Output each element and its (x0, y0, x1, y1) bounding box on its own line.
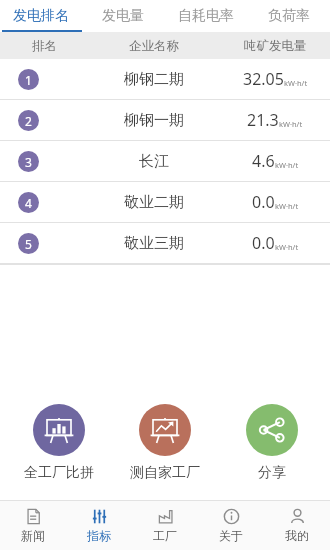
staticText: kW·h/t (275, 160, 299, 170)
staticText: 分享 (258, 464, 286, 482)
staticText: 企业名称 (129, 38, 179, 54)
staticText: 5 (25, 236, 32, 252)
staticText: 柳钢二期 (124, 70, 184, 89)
staticText: 我的 (285, 528, 309, 543)
staticText: 负荷率 (268, 7, 310, 25)
staticText: 3 (25, 154, 32, 170)
button[interactable]: 5 (0, 223, 330, 263)
button[interactable]: 发电排名 (0, 0, 82, 32)
button[interactable]: 1 (0, 59, 330, 99)
staticText: 敬业二期 (124, 193, 184, 212)
other: 全工厂比拼 (44, 415, 74, 445)
staticText: 敬业三期 (124, 234, 184, 253)
button[interactable]: 新闻 (0, 501, 66, 550)
staticText: 长江 (139, 152, 169, 171)
button[interactable]: 2 (0, 100, 330, 140)
button[interactable]: 负荷率 (247, 0, 330, 32)
staticText: 柳钢一期 (124, 111, 184, 130)
staticText: kW·h/t (279, 119, 303, 129)
button[interactable]: 我的 (264, 501, 330, 550)
button[interactable]: 分享 (224, 404, 320, 482)
staticText: 关于 (219, 528, 243, 543)
button[interactable]: 关于 (198, 501, 264, 550)
staticText: 全工厂比拼 (24, 464, 94, 482)
staticText: 0.0 (252, 191, 275, 213)
staticText: 指标 (87, 528, 111, 543)
button[interactable]: 发电量 (82, 0, 164, 32)
button[interactable]: 指标 (66, 501, 132, 550)
staticText: 4.6 (252, 150, 275, 172)
staticText: 21.3 (247, 109, 279, 131)
staticText: 自耗电率 (178, 7, 234, 25)
other: 测自家工厂 (150, 415, 180, 445)
staticText: 发电排名 (13, 7, 69, 25)
button[interactable]: 全工厂比拼 (11, 404, 107, 482)
button[interactable]: 工厂 (132, 501, 198, 550)
staticText: kW·h/t (284, 78, 308, 88)
staticText: kW·h/t (275, 242, 299, 252)
button[interactable]: 3 (0, 141, 330, 181)
staticText: 0.0 (252, 232, 275, 254)
staticText: 2 (25, 113, 32, 129)
staticText: 新闻 (21, 528, 45, 543)
staticText: 4 (25, 195, 32, 211)
staticText: 1 (25, 72, 32, 88)
staticText: kW·h/t (275, 201, 299, 211)
staticText: 吨矿发电量 (244, 38, 307, 54)
button[interactable]: 4 (0, 182, 330, 222)
button[interactable]: 测自家工厂 (117, 404, 213, 482)
staticText: 32.05 (243, 68, 284, 90)
staticText: 工厂 (153, 528, 177, 543)
button[interactable]: 自耗电率 (164, 0, 247, 32)
staticText: 测自家工厂 (130, 464, 200, 482)
staticText: 排名 (32, 38, 57, 54)
other: 分享 (258, 416, 286, 444)
staticText: 发电量 (102, 7, 144, 25)
